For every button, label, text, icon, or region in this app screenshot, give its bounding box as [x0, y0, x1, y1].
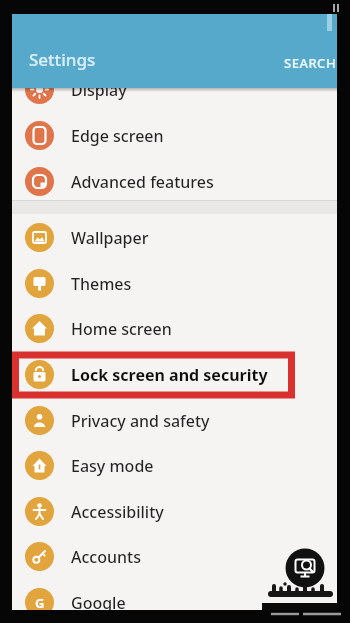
- staticText: Easy mode: [71, 455, 154, 477]
- button[interactable]: Display: [12, 67, 337, 112]
- staticText: Display: [71, 79, 127, 101]
- button[interactable]: Privacy and safety: [12, 398, 337, 443]
- staticText: Google: [71, 592, 126, 610]
- staticText: Home screen: [71, 318, 172, 340]
- button[interactable]: Home screen: [12, 306, 337, 351]
- staticText: G: [35, 594, 45, 610]
- button[interactable]: Easy mode: [12, 443, 337, 488]
- button[interactable]: Lock screen and security: [12, 352, 337, 397]
- button[interactable]: Edge screen: [12, 113, 337, 158]
- staticText: Accessibility: [71, 501, 164, 523]
- staticText: Edge screen: [71, 125, 164, 147]
- button[interactable]: Accounts: [12, 534, 337, 579]
- staticText: Themes: [71, 273, 132, 295]
- button[interactable]: Settings: [29, 48, 96, 71]
- button[interactable]: Accessibility: [12, 489, 337, 534]
- staticText: Advanced features: [71, 171, 214, 193]
- button[interactable]: SEARCH: [284, 54, 337, 72]
- button[interactable]: Themes: [12, 261, 337, 306]
- staticText: Wallpaper: [71, 227, 149, 249]
- button[interactable]: G: [12, 580, 337, 610]
- button[interactable]: Wallpaper: [12, 215, 337, 260]
- staticText: Privacy and safety: [71, 410, 210, 432]
- staticText: Accounts: [71, 546, 141, 568]
- button[interactable]: Advanced features: [12, 159, 337, 204]
- staticText: Lock screen and security: [71, 364, 268, 386]
